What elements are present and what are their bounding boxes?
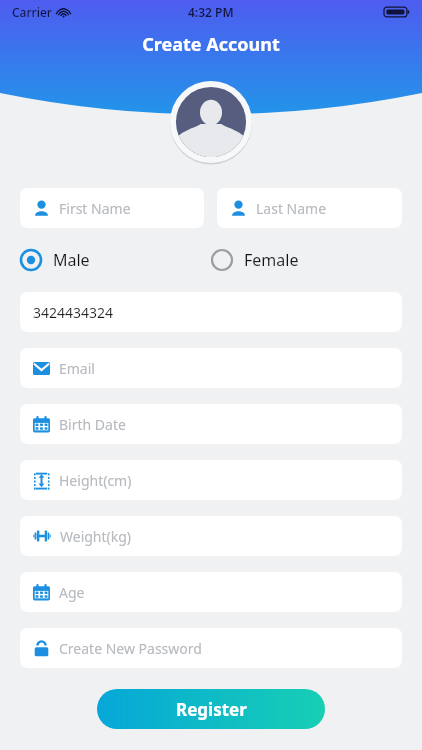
button[interactable]: 3424434324 [20, 292, 402, 332]
staticText: Weight(kg) [60, 527, 132, 546]
button[interactable]: Birth Date [20, 404, 402, 444]
button[interactable]: Female [211, 240, 402, 280]
staticText: Create Account [0, 32, 422, 57]
button[interactable]: Age [20, 572, 402, 612]
button[interactable]: Create New Password [20, 628, 402, 668]
staticText: 4:32 PM [188, 4, 234, 20]
staticText: Carrier [12, 4, 52, 20]
staticText: Register [176, 698, 247, 721]
button[interactable]: Last Name [217, 188, 402, 228]
staticText: 3424434324 [33, 303, 114, 322]
button[interactable]: Weight(kg) [20, 516, 402, 556]
staticText: Male [53, 249, 90, 271]
staticText: Create New Password [59, 639, 202, 658]
button[interactable]: Height(cm) [20, 460, 402, 500]
button[interactable]: Register [97, 689, 325, 729]
staticText: First Name [59, 199, 131, 218]
staticText: Female [244, 249, 299, 271]
button[interactable]: Email [20, 348, 402, 388]
staticText: Height(cm) [59, 471, 132, 490]
staticText: Email [59, 359, 95, 378]
button[interactable]: Male [20, 240, 211, 280]
staticText: Last Name [256, 199, 327, 218]
staticText: Age [59, 583, 85, 602]
button[interactable]: First Name [20, 188, 204, 228]
staticText: Birth Date [59, 415, 126, 434]
